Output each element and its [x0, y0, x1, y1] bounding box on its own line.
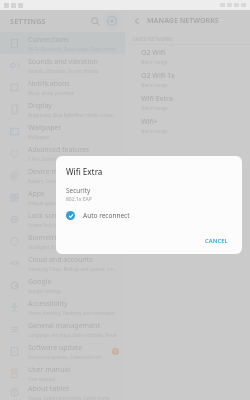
staticText: Download updates, Scheduled soft... — [28, 354, 105, 360]
staticText: Default apps, App permissions — [28, 200, 93, 206]
staticText: User manual — [28, 376, 55, 382]
staticText: Block, allow, prioritise — [28, 90, 74, 96]
staticText: Lock screen and security — [28, 211, 109, 221]
button[interactable]: Display — [0, 98, 125, 120]
button[interactable]: Notifications — [0, 76, 125, 98]
staticText: Software update — [28, 343, 83, 353]
button[interactable]: Accessibility — [0, 296, 125, 318]
staticText: Security — [66, 186, 91, 195]
button[interactable]: Lock screen and security — [0, 208, 125, 230]
staticText: Not in range — [141, 128, 168, 134]
button[interactable]: Cloud and accounts — [0, 252, 125, 274]
staticText: Battery, Storage, Memory — [28, 178, 83, 184]
staticText: Vision, Hearing, Dexterity and interacti… — [28, 310, 115, 316]
staticText: Status, Legal information, Tablet name — [28, 395, 110, 400]
staticText: CANCEL — [205, 237, 228, 245]
staticText: Google — [28, 277, 52, 287]
staticText: User manual — [28, 365, 70, 375]
staticText: Display — [28, 101, 52, 111]
staticText: SAVED NETWORKS — [133, 36, 173, 42]
button[interactable]: Search — [87, 13, 103, 29]
button[interactable]: Sounds and vibration — [0, 54, 125, 76]
staticText: Wifi Extra — [66, 166, 103, 177]
staticText: Connections — [28, 35, 69, 45]
button[interactable]: Biometrics and security — [0, 230, 125, 252]
staticText: Intelligent Scan, Face, Iris — [28, 244, 82, 250]
button[interactable]: O2 Wifi 1x — [125, 68, 250, 91]
staticText: Sounds, Vibration, Do not disturb — [28, 68, 99, 74]
button[interactable]: User manual — [0, 362, 125, 384]
staticText: Brightness, Blue light filter, Home scre… — [28, 112, 114, 118]
button[interactable]: General management — [0, 318, 125, 340]
staticText: Advanced features — [28, 145, 90, 155]
staticText: Language and input, Date and time, Reset — [28, 332, 117, 338]
staticText: 1 — [114, 349, 117, 354]
button[interactable]: Google — [0, 274, 125, 296]
button[interactable]: Wallpaper — [0, 120, 125, 142]
staticText: General management — [28, 321, 100, 331]
button[interactable]: Device maintenance — [0, 164, 125, 186]
staticText: Apps — [28, 189, 45, 199]
staticText: Wallpaper — [28, 123, 62, 133]
staticText: O2 Wifi — [141, 48, 166, 58]
button[interactable]: Apps — [0, 186, 125, 208]
staticText: Samsung Cloud, Backup and restore, Smart… — [28, 266, 119, 272]
button[interactable]: Back — [129, 13, 145, 29]
button[interactable]: CANCEL — [199, 234, 234, 248]
staticText: 802.1x EAP — [66, 196, 92, 203]
staticText: Device maintenance — [28, 167, 95, 177]
button[interactable]: Software update — [0, 340, 125, 362]
button[interactable]: Wifi Extra — [125, 91, 250, 114]
staticText: Wallpaper — [28, 134, 50, 140]
staticText: Auto reconnect — [83, 211, 130, 220]
button[interactable]: Auto reconnect — [66, 211, 130, 220]
staticText: Not in range — [141, 59, 168, 65]
staticText: Not in range — [141, 82, 168, 88]
staticText: Biometrics and security — [28, 233, 105, 243]
button[interactable]: O2 Wifi — [125, 45, 250, 68]
staticText: Wifi Extra — [141, 94, 173, 104]
staticText: O2 Wifi 1x — [141, 71, 175, 81]
staticText: Google settings — [28, 288, 62, 294]
staticText: Not in range — [141, 105, 168, 111]
staticText: Accessibility — [28, 299, 68, 309]
button[interactable]: Advanced features — [0, 142, 125, 164]
staticText: Cloud and accounts — [28, 255, 93, 265]
staticText: Notifications — [28, 79, 70, 89]
staticText: About tablet — [28, 384, 69, 394]
staticText: Wi-Fi, Bluetooth, Data usage, Flight mod… — [28, 46, 116, 52]
staticText: S Pen, Games — [28, 156, 57, 162]
button[interactable]: Connections — [0, 32, 125, 54]
staticText: MANAGE NETWORKS — [147, 16, 219, 26]
staticText: Sounds and vibration — [28, 57, 98, 67]
button[interactable]: Account — [103, 12, 121, 30]
staticText: Wifi+ — [141, 117, 158, 127]
staticText: SETTINGS — [10, 16, 46, 26]
button[interactable]: About tablet — [0, 384, 125, 400]
staticText: Screen lock type, Fingerprints — [28, 222, 91, 228]
